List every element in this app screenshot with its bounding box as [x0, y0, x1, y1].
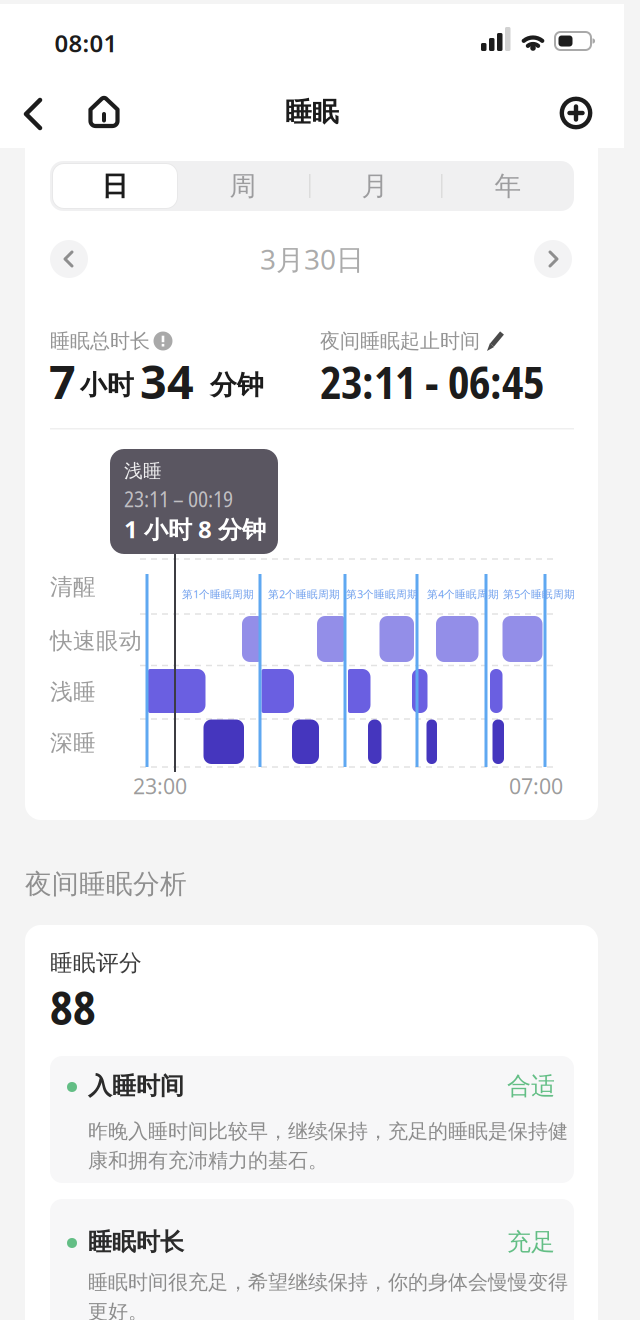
button[interactable]: 年 — [444, 164, 572, 208]
staticText: 睡眠总时长 — [50, 328, 150, 354]
staticText: 第2个睡眠周期 — [268, 587, 340, 601]
staticText: 浅睡 — [124, 459, 162, 483]
staticText: 7 — [49, 349, 76, 413]
staticText: 小时 — [80, 368, 134, 402]
staticText: 分钟 — [210, 368, 264, 402]
staticText: 清醒 — [50, 573, 96, 601]
staticText: 睡眠评分 — [50, 949, 142, 977]
staticText: 睡眠 — [285, 95, 339, 129]
staticText: 日 — [101, 169, 128, 203]
staticText: 浅睡 — [50, 678, 96, 706]
staticText: 08:01 — [54, 27, 117, 59]
button[interactable]: 前一天 — [50, 240, 88, 278]
staticText: 23:11 - 06:45 — [320, 352, 544, 412]
staticText: 07:00 — [509, 771, 563, 801]
button[interactable]: 主页 — [82, 91, 126, 135]
staticText: 昨晚入睡时间比较早，继续保持，充足的睡眠是保持健康和拥有充沛精力的基石。 — [88, 1119, 568, 1173]
staticText: 夜间睡眠起止时间 — [320, 328, 480, 354]
staticText: 入睡时间 — [88, 1071, 184, 1101]
staticText: 快速眼动 — [50, 627, 142, 655]
staticText: 第1个睡眠周期 — [182, 587, 254, 601]
button[interactable]: 后一天 — [534, 240, 572, 278]
button[interactable]: 月 — [311, 164, 439, 208]
button[interactable]: 睡眠总时长说明 — [153, 331, 172, 350]
staticText: 23:00 — [133, 771, 187, 801]
button[interactable]: 返回 — [13, 92, 57, 136]
staticText: 年 — [494, 169, 521, 203]
button[interactable]: 周 — [179, 164, 307, 208]
staticText: 合适 — [507, 1071, 555, 1101]
staticText: 月 — [361, 169, 388, 203]
staticText: 睡眠时长 — [88, 1227, 184, 1257]
staticText: 第4个睡眠周期 — [427, 587, 499, 601]
staticText: 34 — [140, 349, 194, 413]
staticText: 23:11 – 00:19 — [124, 484, 233, 514]
staticText: 第3个睡眠周期 — [346, 587, 418, 601]
staticText: 夜间睡眠分析 — [25, 867, 187, 901]
staticText: 3月30日 — [260, 240, 364, 278]
staticText: 睡眠时间很充足，希望继续保持，你的身体会慢慢变得更好。 — [88, 1270, 568, 1320]
staticText: 周 — [229, 169, 256, 203]
button[interactable]: 编辑夜间睡眠起止时间 — [475, 321, 515, 361]
staticText: 88 — [50, 975, 96, 1039]
staticText: 1 小时 8 分钟 — [124, 513, 266, 545]
staticText: 第5个睡眠周期 — [503, 587, 575, 601]
button[interactable]: 添加 — [554, 91, 598, 135]
staticText: 充足 — [507, 1227, 555, 1257]
button[interactable]: 日 — [52, 163, 178, 209]
staticText: 深睡 — [50, 729, 96, 757]
